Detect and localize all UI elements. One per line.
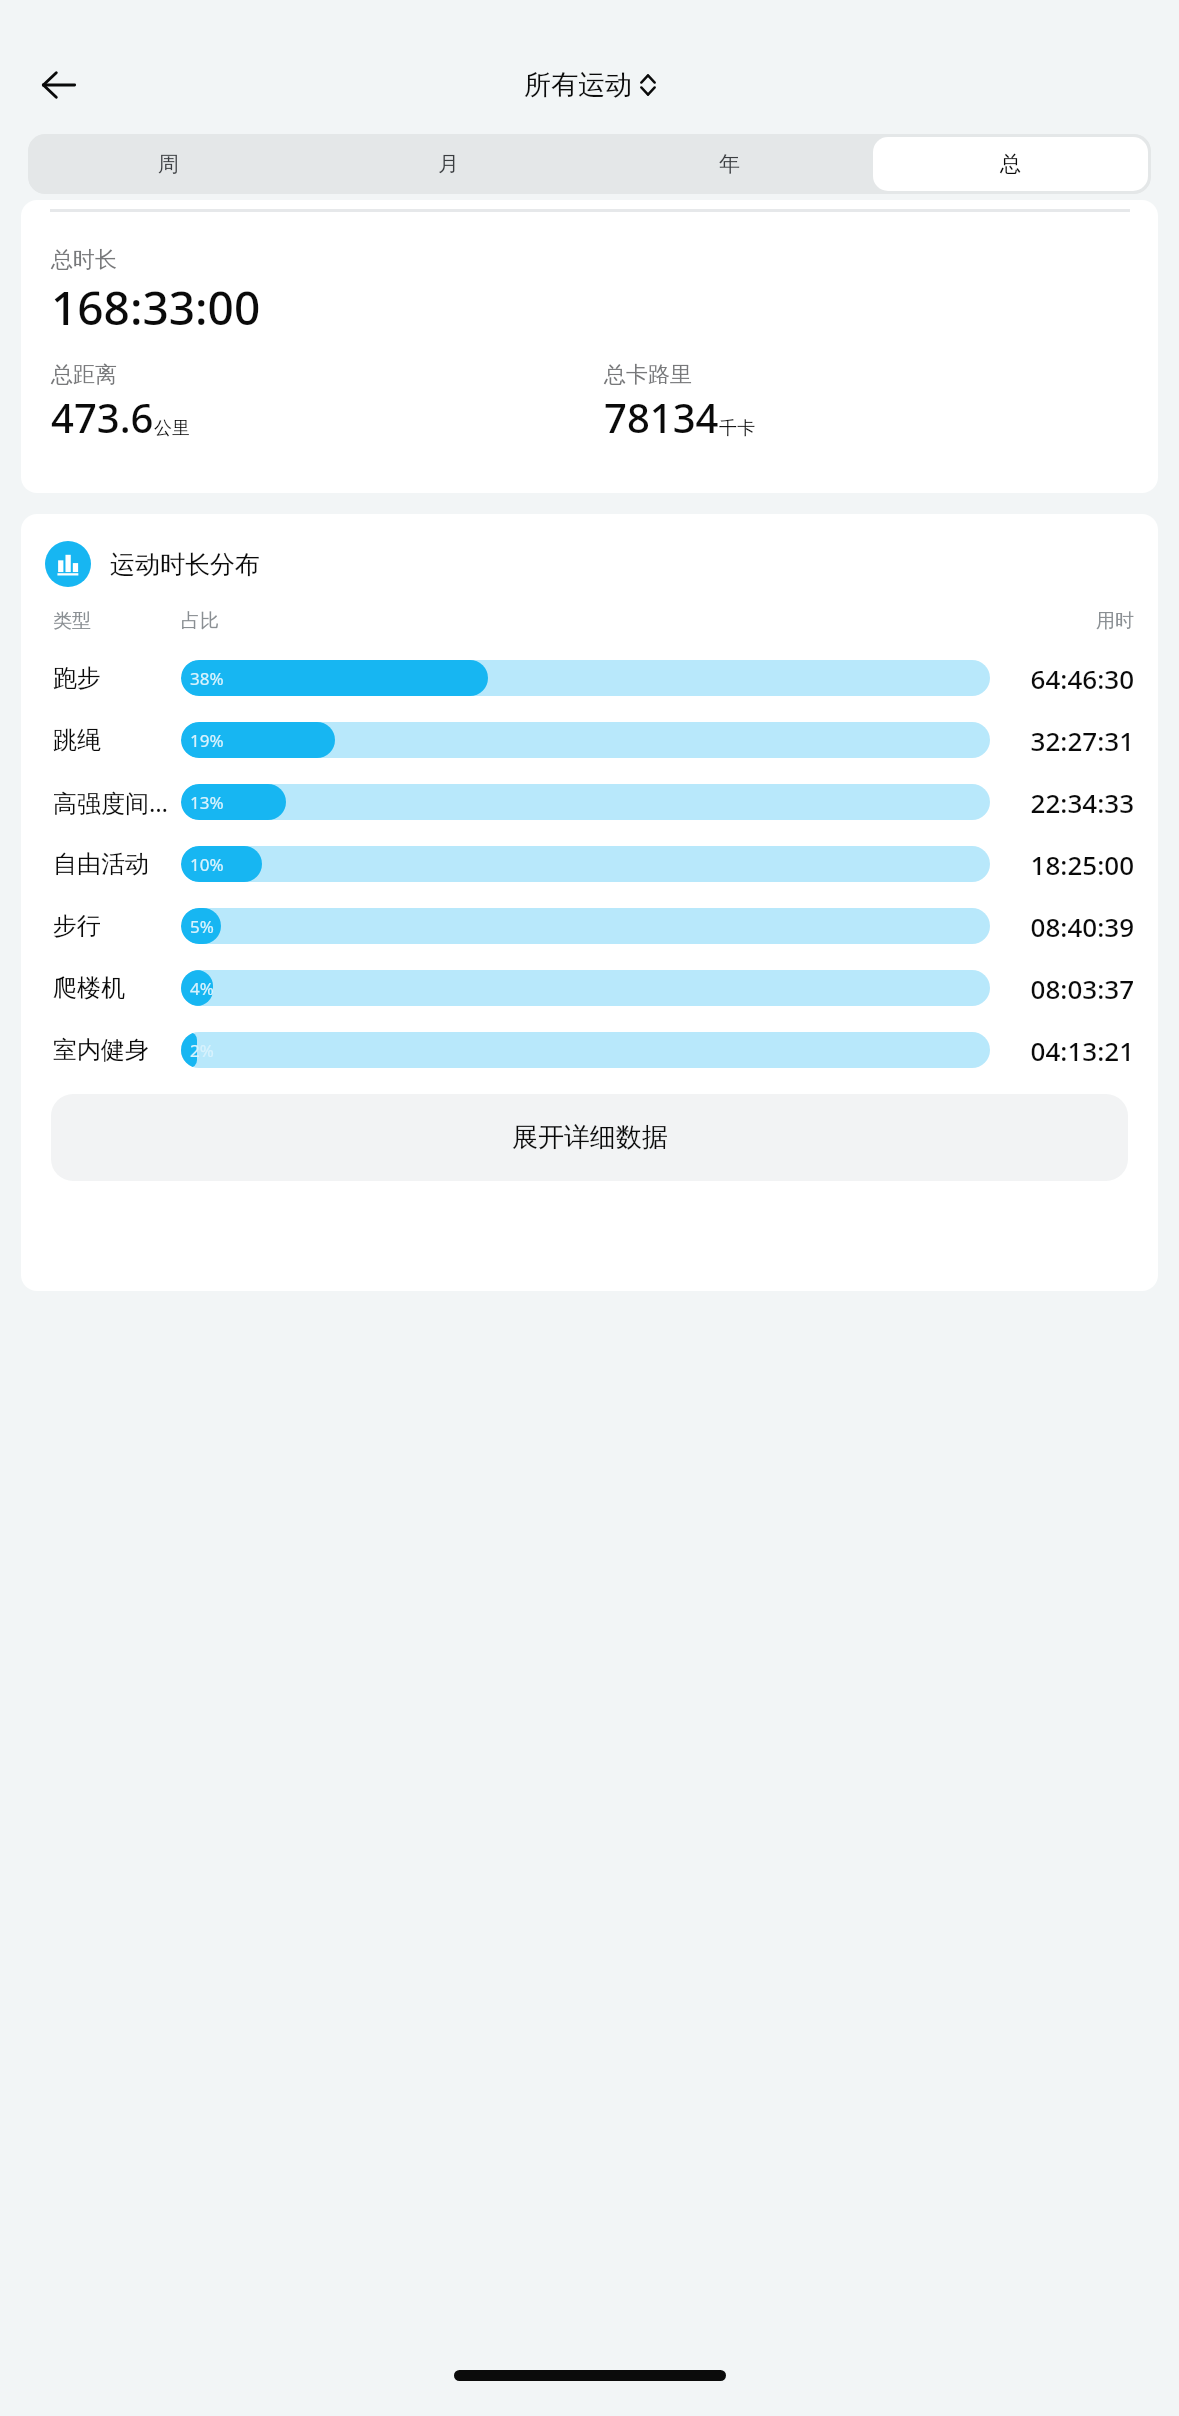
staticText: 10% — [190, 853, 224, 876]
staticText: 高强度间… — [53, 786, 181, 819]
staticText: 展开详细数据 — [512, 1121, 668, 1154]
staticText: 04:13:21 — [994, 1033, 1134, 1068]
button[interactable]: 周 — [31, 137, 305, 191]
staticText: 周 — [158, 151, 179, 177]
staticText: 38% — [190, 667, 224, 690]
staticText: 168:33:00 — [51, 276, 261, 339]
staticText: 千卡 — [719, 417, 755, 440]
staticText: 总卡路里 — [604, 361, 692, 389]
button[interactable]: 跑步 — [53, 647, 1134, 709]
staticText: 跑步 — [53, 663, 181, 693]
staticText: 占比 — [181, 609, 994, 633]
staticText: 总 — [1000, 151, 1021, 177]
staticText: 用时 — [994, 609, 1134, 633]
button[interactable]: 月 — [311, 137, 586, 191]
staticText: 18:25:00 — [994, 847, 1134, 882]
staticText: 78134 — [604, 390, 719, 444]
staticText: 32:27:31 — [994, 723, 1134, 758]
staticText: 08:40:39 — [994, 909, 1134, 944]
staticText: 室内健身 — [53, 1035, 181, 1065]
staticText: 2% — [190, 1039, 214, 1062]
staticText: 类型 — [53, 609, 181, 633]
button[interactable]: 高强度间… — [53, 771, 1134, 833]
staticText: 自由活动 — [53, 849, 181, 879]
staticText: 22:34:33 — [994, 785, 1134, 820]
button[interactable]: 跳绳 — [53, 709, 1134, 771]
button[interactable]: 步行 — [53, 895, 1134, 957]
staticText: 473.6 — [51, 390, 154, 444]
staticText: 13% — [190, 791, 224, 814]
staticText: 4% — [190, 977, 214, 1000]
staticText: 总距离 — [51, 361, 117, 389]
staticText: 爬楼机 — [53, 973, 181, 1003]
staticText: 所有运动 — [524, 68, 632, 102]
staticText: 08:03:37 — [994, 971, 1134, 1006]
button[interactable]: 总 — [873, 137, 1148, 191]
staticText: 总时长 — [51, 246, 117, 274]
staticText: 跳绳 — [53, 725, 181, 755]
staticText: 运动时长分布 — [110, 549, 260, 580]
staticText: 年 — [719, 151, 740, 177]
button[interactable]: Back — [33, 59, 85, 111]
button[interactable]: 室内健身 — [53, 1019, 1134, 1081]
button[interactable]: 自由活动 — [53, 833, 1134, 895]
button[interactable]: 爬楼机 — [53, 957, 1134, 1019]
staticText: 64:46:30 — [994, 661, 1134, 696]
staticText: 步行 — [53, 911, 181, 941]
staticText: 月 — [438, 151, 459, 177]
staticText: 19% — [190, 729, 224, 752]
button[interactable]: 展开详细数据 — [51, 1094, 1128, 1181]
staticText: 5% — [190, 915, 214, 938]
button[interactable]: 所有运动 — [524, 68, 656, 102]
staticText: 公里 — [154, 417, 190, 440]
button[interactable]: 年 — [592, 137, 867, 191]
